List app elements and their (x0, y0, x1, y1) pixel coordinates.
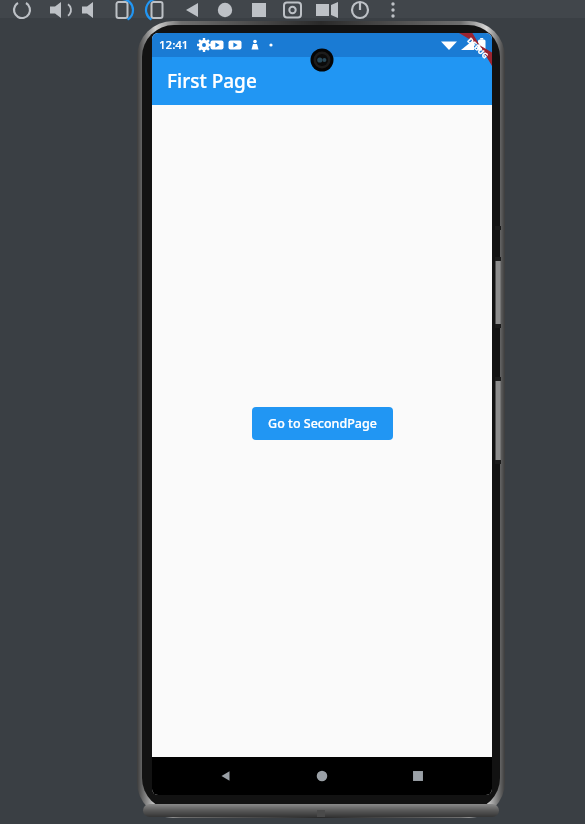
staticText: Go to SecondPage (268, 415, 377, 432)
staticText: DEBUG (465, 35, 491, 61)
staticText: 12:41 (159, 37, 189, 53)
other: Emulator controls (0, 0, 585, 18)
staticText: First Page (167, 68, 257, 94)
button[interactable]: Recent apps (396, 757, 440, 795)
button[interactable]: Home (300, 757, 344, 795)
button[interactable]: Back (204, 757, 248, 795)
button[interactable]: Go to SecondPage (252, 407, 393, 440)
